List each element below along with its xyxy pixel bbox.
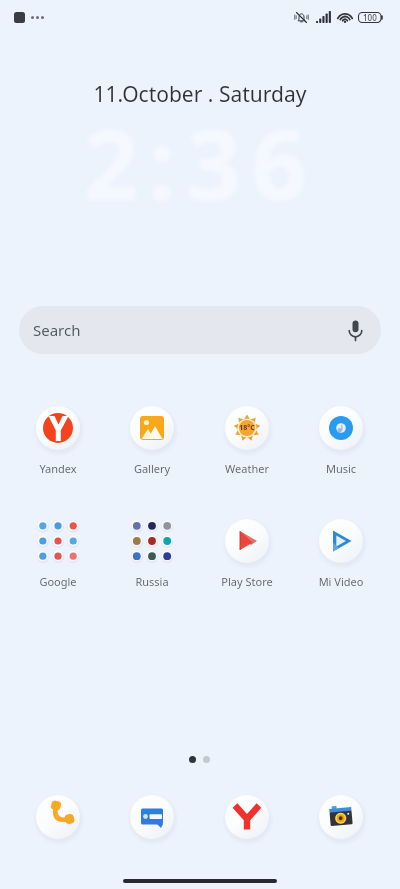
button[interactable]: Messages: [127, 792, 177, 842]
button[interactable]: Camera: [316, 792, 366, 842]
button[interactable]: Play Store: [210, 516, 284, 589]
staticText: Russia: [115, 574, 189, 589]
staticText: Music: [304, 461, 378, 476]
staticText: Play Store: [210, 574, 284, 589]
other: Voice search: [348, 320, 363, 341]
staticText: Weather: [210, 461, 284, 476]
button[interactable]: Yandex Browser: [222, 792, 272, 842]
button[interactable]: Gallery: [115, 403, 189, 476]
button[interactable]: Mi Video: [304, 516, 378, 589]
staticText: Search: [33, 320, 81, 340]
button[interactable]: Yandex: [21, 403, 95, 476]
button[interactable]: Google: [21, 516, 95, 589]
button[interactable]: Russia: [115, 516, 189, 589]
staticText: 11.October . Saturday: [0, 80, 400, 109]
staticText: Google: [21, 574, 95, 589]
staticText: Gallery: [115, 461, 189, 476]
staticText: Yandex: [21, 461, 95, 476]
button[interactable]: Phone: [33, 792, 83, 842]
button[interactable]: Music: [304, 403, 378, 476]
staticText: Mi Video: [304, 574, 378, 589]
button[interactable]: Search: [19, 306, 381, 354]
button[interactable]: 18°C: [210, 403, 284, 476]
staticText: 18°C: [239, 423, 255, 433]
staticText: 100: [363, 12, 377, 23]
staticText: 2:36: [0, 96, 400, 228]
